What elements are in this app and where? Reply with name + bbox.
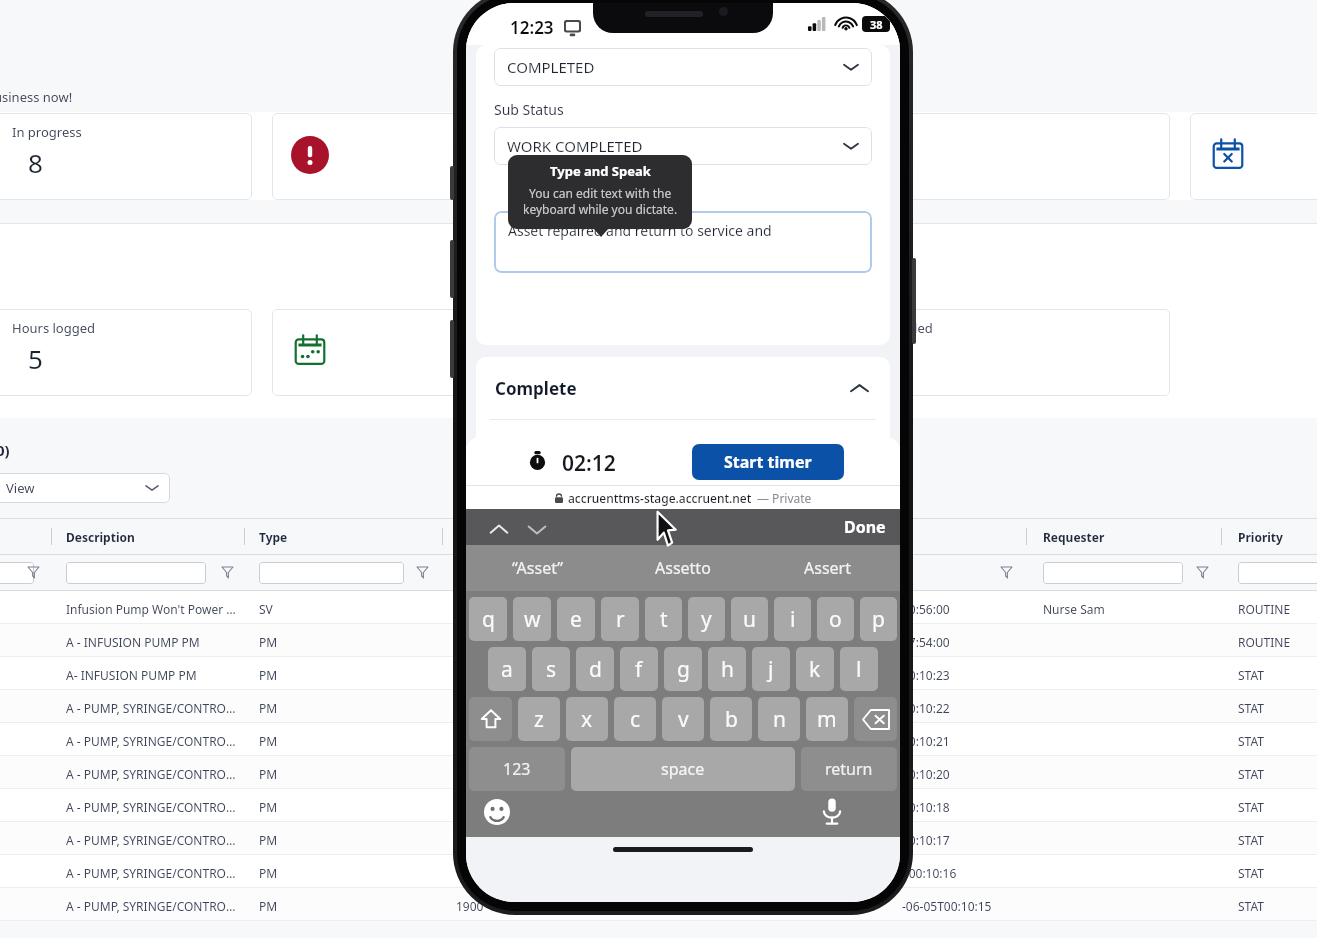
button[interactable]: Assert <box>755 545 900 591</box>
button[interactable]: A - PUMP, SYRINGE/CONTROLL... <box>0 690 1317 723</box>
button[interactable]: o <box>817 597 854 641</box>
button[interactable]: View <box>0 473 170 503</box>
button[interactable]: n <box>758 697 800 741</box>
button[interactable]: s <box>532 647 570 691</box>
staticText: Assert <box>804 557 851 579</box>
staticText: Start timer <box>724 451 812 473</box>
button[interactable]: i <box>774 597 811 641</box>
button[interactable]: v <box>662 697 704 741</box>
button[interactable]: x <box>566 697 608 741</box>
staticText: keyboard while you dictate. <box>523 201 678 217</box>
staticText: space <box>661 758 705 780</box>
button[interactable] <box>1043 562 1183 584</box>
button[interactable]: f <box>620 647 658 691</box>
button[interactable]: g <box>664 647 702 691</box>
staticText: You can edit text with the <box>529 185 672 201</box>
button[interactable]: WORK COMPLETED <box>494 127 872 165</box>
staticText: COMPLETED <box>507 57 595 77</box>
staticText: PM <box>259 898 278 914</box>
button[interactable]: Dictate <box>816 795 848 827</box>
button[interactable]: Backspace <box>854 697 897 741</box>
button[interactable] <box>1238 562 1317 584</box>
staticText: 10:56:00 <box>902 601 950 617</box>
button[interactable]: Open scheduled <box>780 113 1170 200</box>
button[interactable]: y <box>688 597 725 641</box>
staticText: 12:23 <box>510 16 554 39</box>
button[interactable]: 123 <box>469 747 565 791</box>
staticText: Meter Reading <box>495 435 599 455</box>
button[interactable]: Asset repaired and return to service and <box>494 211 872 273</box>
staticText: Nurse Sam <box>1043 601 1105 617</box>
button[interactable]: Complete <box>476 357 890 419</box>
staticText: In progress <box>12 123 82 141</box>
staticText: h <box>721 655 734 684</box>
staticText: Assetto <box>655 557 711 579</box>
staticText: b <box>725 705 738 734</box>
staticText: o <box>829 605 842 634</box>
staticText: n <box>773 705 786 734</box>
staticText: k <box>809 655 821 684</box>
button[interactable]: e <box>557 597 595 641</box>
staticText: PM <box>259 766 278 782</box>
button[interactable]: Metric icon <box>272 309 532 396</box>
button[interactable]: q <box>469 597 507 641</box>
button[interactable]: return <box>801 747 897 791</box>
button[interactable]: Done <box>844 516 886 538</box>
staticText: 02:12 <box>562 449 616 478</box>
button[interactable]: d <box>576 647 614 691</box>
button[interactable]: A - PUMP, SYRINGE/CONTROLL... <box>0 789 1317 822</box>
button[interactable] <box>259 562 404 584</box>
button[interactable]: Emoji <box>482 797 512 827</box>
button[interactable]: c <box>614 697 656 741</box>
button[interactable]: ompleted unscheduled <box>780 309 1170 396</box>
button[interactable]: A - PUMP, SYRINGE/CONTROLL... <box>0 756 1317 789</box>
staticText: PM <box>259 700 278 716</box>
button[interactable]: In progress <box>0 113 252 200</box>
button[interactable]: A- INFUSION PUMP PM <box>0 657 1317 690</box>
staticText: T00:10:16 <box>902 865 957 881</box>
staticText: A- INFUSION PUMP PM <box>66 667 241 683</box>
button[interactable]: Hours logged <box>0 309 252 396</box>
button[interactable]: w <box>513 597 551 641</box>
button[interactable]: p <box>860 597 897 641</box>
staticText: STAT <box>1238 865 1264 881</box>
staticText: A - INFUSION PUMP PM <box>66 634 241 650</box>
button[interactable]: A - PUMP, SYRINGE/CONTROLL... <box>0 723 1317 756</box>
button[interactable]: A - INFUSION PUMP PM <box>0 624 1317 657</box>
staticText: PM <box>259 832 278 848</box>
staticText: Sub Status <box>494 100 564 119</box>
button[interactable]: Start timer <box>692 444 844 480</box>
staticText: g <box>677 655 690 684</box>
button[interactable]: Metric icon <box>1190 113 1317 200</box>
button[interactable]: a <box>488 647 526 691</box>
button[interactable]: z <box>518 697 560 741</box>
button[interactable]: l <box>840 647 878 691</box>
button[interactable]: r <box>601 597 639 641</box>
button[interactable]: Assetto <box>610 545 755 591</box>
button[interactable]: Metric icon <box>272 113 532 200</box>
button[interactable]: b <box>710 697 752 741</box>
staticText: Infusion Pump Won't Power On <box>66 601 241 617</box>
button[interactable]: A - PUMP, SYRINGE/CONTROLL... <box>0 855 1317 888</box>
button[interactable]: j <box>752 647 790 691</box>
button[interactable]: Next field <box>526 519 548 541</box>
button[interactable]: “Asset” <box>466 545 610 591</box>
staticText: A - PUMP, SYRINGE/CONTROLL... <box>66 865 241 881</box>
button[interactable]: A - PUMP, SYRINGE/CONTROLL... <box>0 888 1317 921</box>
staticText: u <box>743 605 756 634</box>
staticText: PM <box>259 634 278 650</box>
button[interactable]: COMPLETED <box>494 48 872 86</box>
staticText: A - PUMP, SYRINGE/CONTROLL... <box>66 733 241 749</box>
button[interactable] <box>66 562 206 584</box>
button[interactable]: t <box>645 597 682 641</box>
button[interactable]: A - PUMP, SYRINGE/CONTROLL... <box>0 822 1317 855</box>
button[interactable]: Infusion Pump Won't Power On <box>0 591 1317 624</box>
button[interactable]: Shift <box>469 697 512 741</box>
button[interactable]: u <box>731 597 768 641</box>
button[interactable]: m <box>806 697 848 741</box>
button[interactable]: Previous field <box>488 519 510 541</box>
button[interactable]: k <box>796 647 834 691</box>
button[interactable]: h <box>708 647 746 691</box>
button[interactable]: space <box>571 747 795 791</box>
staticText: t <box>660 605 668 634</box>
